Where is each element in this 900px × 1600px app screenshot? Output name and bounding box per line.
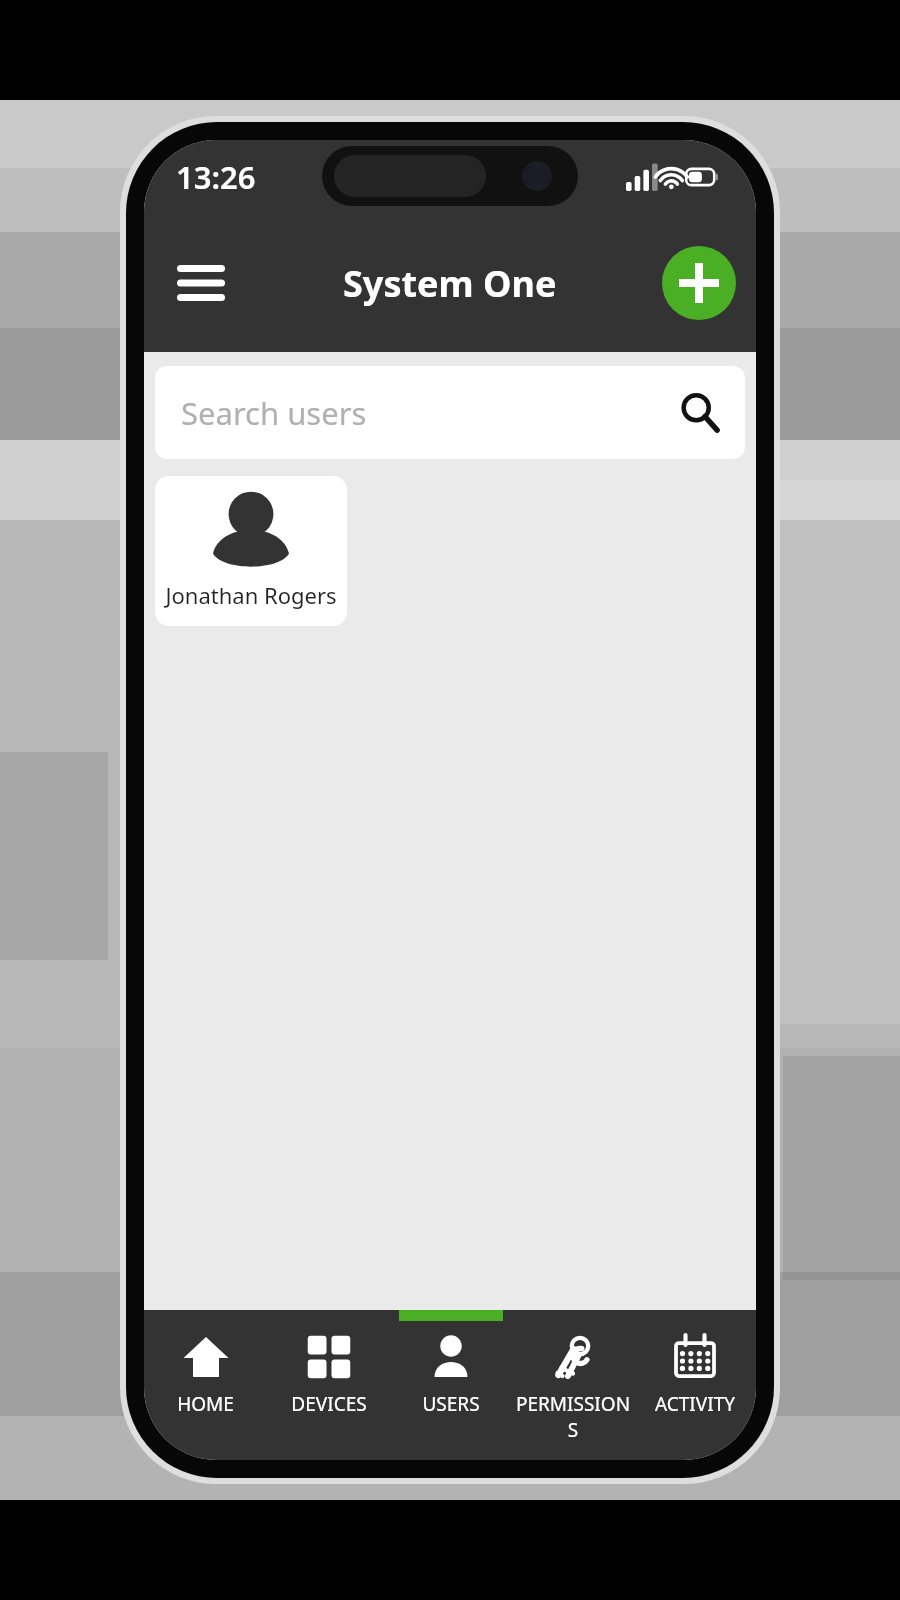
button[interactable]: Search users xyxy=(155,366,745,459)
staticText: Jonathan Rogers xyxy=(165,580,337,610)
staticText: HOME xyxy=(177,1391,234,1417)
button[interactable]: PERMISSIONS xyxy=(512,1310,634,1460)
button[interactable]: Add user xyxy=(662,246,736,320)
button[interactable]: Jonathan Rogers xyxy=(155,476,347,626)
staticText: DEVICES xyxy=(291,1391,367,1417)
button[interactable]: DEVICES xyxy=(267,1310,390,1460)
staticText: ACTIVITY xyxy=(655,1391,735,1417)
button[interactable]: Open navigation menu xyxy=(164,246,238,320)
staticText: Search users xyxy=(181,392,367,434)
staticText: USERS xyxy=(422,1391,480,1417)
staticText: System One xyxy=(343,259,557,308)
button[interactable]: ACTIVITY xyxy=(634,1310,756,1460)
staticText: 13:26 xyxy=(176,156,256,198)
staticText: PERMISSIONS xyxy=(512,1391,634,1443)
button[interactable]: USERS xyxy=(390,1310,512,1460)
button[interactable]: HOME xyxy=(144,1310,267,1460)
